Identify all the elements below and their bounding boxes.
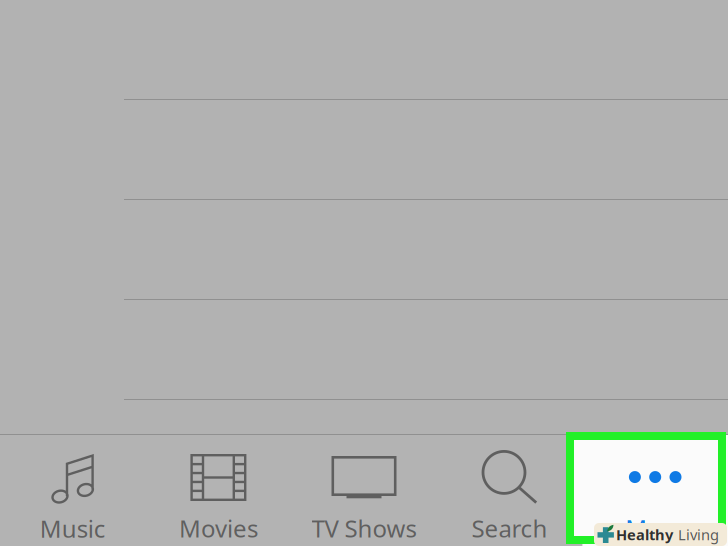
button[interactable]: TV Shows (291, 435, 437, 546)
staticText: Music (40, 513, 106, 544)
button[interactable]: More (582, 435, 728, 546)
button[interactable]: Search (437, 435, 582, 546)
button[interactable]: Movies (146, 435, 291, 546)
staticText: More (625, 512, 685, 544)
button[interactable]: Music (0, 435, 146, 546)
staticText: More (625, 512, 685, 544)
staticText: TV Shows (311, 512, 416, 544)
staticText: Search (472, 512, 548, 544)
staticText: Living (678, 525, 719, 544)
staticText: Movies (179, 512, 258, 544)
staticText: Healthy (616, 525, 677, 544)
